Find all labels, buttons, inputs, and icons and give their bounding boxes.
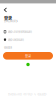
button[interactable]: 登录即表示同意《用户协议》与《隐私政策》	[1, 93, 55, 96]
staticText: 请输入短信验证码	[8, 38, 24, 41]
button[interactable]: 密码登录	[3, 45, 12, 50]
button[interactable]: WeChat login	[25, 62, 30, 67]
button[interactable]: Back	[2, 6, 9, 14]
staticText: 请输入手机号码获取验证码	[8, 30, 32, 33]
staticText: 密码登录	[4, 46, 12, 49]
button[interactable]: 登录	[3, 52, 53, 60]
staticText: 登录后体验更多	[4, 20, 18, 23]
staticText: 登录	[4, 15, 12, 21]
staticText: 登录即表示同意《用户协议》与《隐私政策》	[8, 93, 48, 96]
staticText: 登录	[25, 54, 31, 58]
